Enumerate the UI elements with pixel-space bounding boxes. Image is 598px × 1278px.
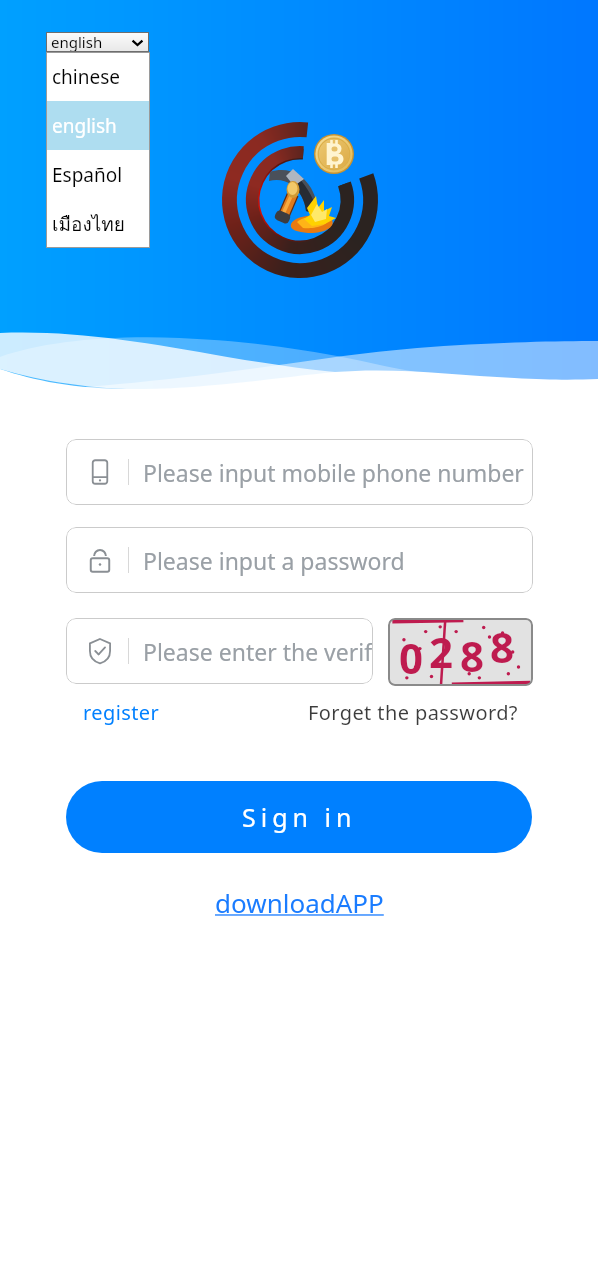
button[interactable]: Please input a password	[66, 527, 533, 593]
button[interactable]: Sign in	[66, 781, 532, 853]
button[interactable]: Please input mobile phone number	[66, 439, 533, 505]
staticText: Please input mobile phone number	[143, 457, 524, 488]
button[interactable]: เมืองไทย	[46, 199, 150, 248]
button[interactable]: register	[83, 699, 160, 726]
staticText: english	[52, 113, 117, 139]
staticText: เมืองไทย	[52, 209, 125, 239]
button[interactable]: downloadAPP	[215, 885, 384, 920]
button[interactable]: Refresh verification code	[388, 618, 533, 686]
staticText: Español	[52, 162, 123, 188]
staticText: english	[51, 32, 103, 52]
button[interactable]: Forget the password?	[308, 699, 518, 726]
button[interactable]: english	[46, 32, 149, 52]
staticText: 8	[490, 618, 515, 675]
staticText: 8	[460, 627, 485, 684]
staticText: 2	[429, 623, 454, 680]
staticText: chinese	[52, 64, 121, 90]
staticText: Please enter the verification code	[143, 636, 373, 667]
button[interactable]: chinese	[46, 52, 150, 101]
staticText: Please input a password	[143, 545, 405, 576]
button[interactable]: Español	[46, 150, 150, 199]
button[interactable]: Please enter the verification code	[66, 618, 373, 684]
staticText: Sign in	[242, 800, 357, 834]
staticText: 0	[399, 629, 424, 686]
button[interactable]: english	[46, 101, 150, 150]
